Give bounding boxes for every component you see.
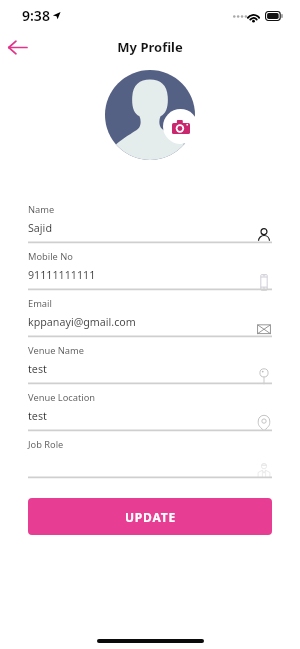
button[interactable]: Job Role bbox=[0, 432, 300, 479]
button[interactable]: Venue Location bbox=[0, 385, 300, 432]
staticText: UPDATE bbox=[125, 509, 176, 525]
staticText: test bbox=[28, 362, 47, 377]
staticText: Venue Name bbox=[28, 344, 85, 357]
button[interactable]: Back bbox=[1, 33, 33, 61]
staticText: 9:38 bbox=[22, 6, 50, 25]
button[interactable]: Change photo bbox=[105, 70, 195, 160]
staticText: 91111111111 bbox=[28, 268, 96, 283]
staticText: Name bbox=[28, 203, 55, 216]
button[interactable]: Email bbox=[0, 291, 300, 338]
button[interactable]: Name bbox=[0, 197, 300, 244]
staticText: kppanayi@gmail.com bbox=[28, 315, 136, 330]
button[interactable]: Mobile No bbox=[0, 244, 300, 291]
button[interactable]: Venue Name bbox=[0, 338, 300, 385]
staticText: Job Role bbox=[28, 438, 64, 451]
button[interactable]: UPDATE bbox=[28, 498, 272, 535]
staticText: My Profile bbox=[117, 38, 183, 56]
staticText: Sajid bbox=[28, 221, 52, 236]
staticText: test bbox=[28, 409, 47, 424]
staticText: Venue Location bbox=[28, 391, 96, 404]
staticText: Mobile No bbox=[28, 250, 73, 263]
staticText: Email bbox=[28, 297, 52, 310]
